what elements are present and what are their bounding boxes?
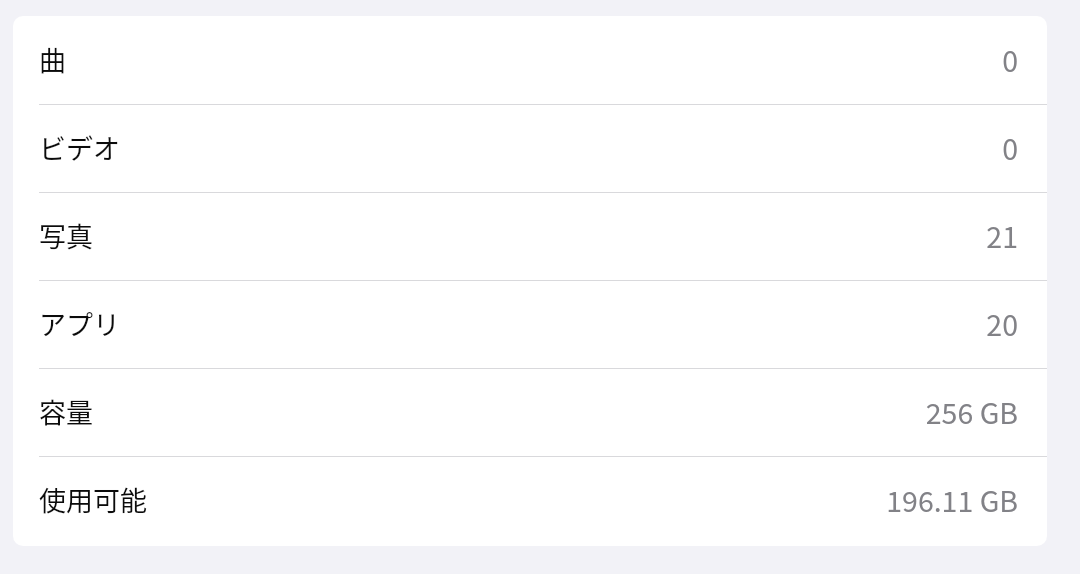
staticText: ビデオ: [39, 128, 120, 167]
staticText: 0: [1002, 127, 1018, 168]
staticText: 容量: [39, 392, 93, 431]
staticText: アプリ: [39, 304, 120, 343]
button[interactable]: 曲: [13, 16, 1047, 104]
staticText: 曲: [39, 40, 66, 79]
button[interactable]: ビデオ: [13, 104, 1047, 192]
button[interactable]: 写真: [13, 192, 1047, 280]
staticText: 196.11 GB: [886, 479, 1018, 520]
button[interactable]: アプリ: [13, 280, 1047, 368]
staticText: 0: [1002, 39, 1018, 80]
staticText: 使用可能: [39, 480, 147, 519]
staticText: 256 GB: [925, 391, 1018, 432]
button[interactable]: 使用可能: [13, 456, 1047, 544]
staticText: 21: [986, 215, 1018, 256]
staticText: 20: [986, 303, 1018, 344]
button[interactable]: 容量: [13, 368, 1047, 456]
staticText: 写真: [39, 216, 93, 255]
